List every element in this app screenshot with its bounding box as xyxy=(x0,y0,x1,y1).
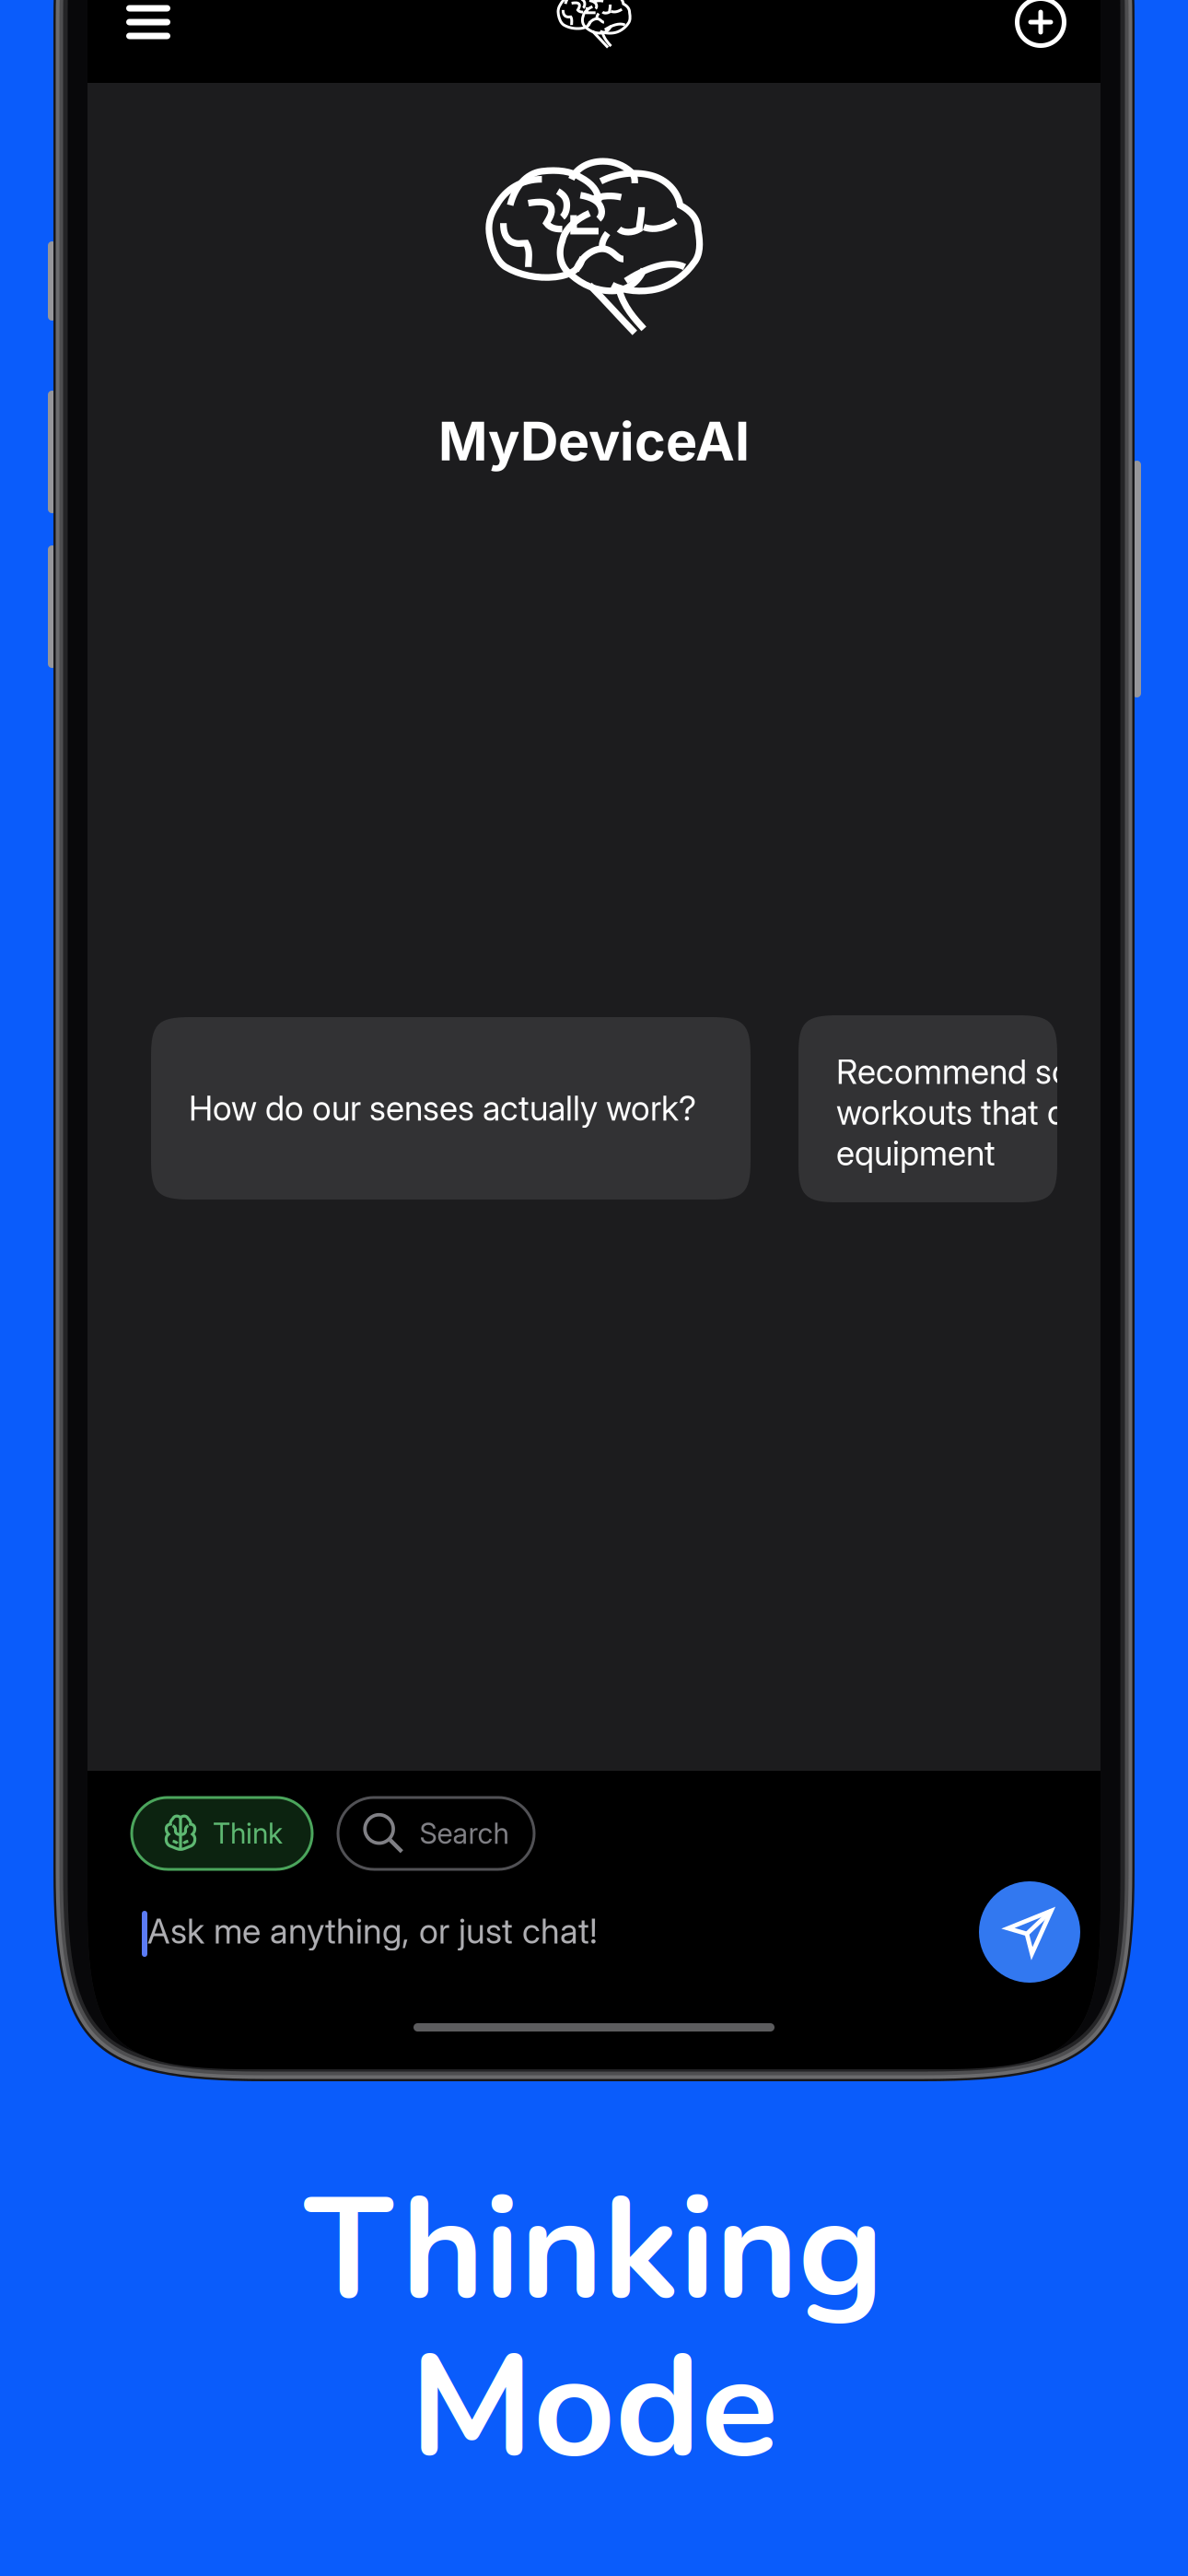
button[interactable]: Menu xyxy=(93,0,204,77)
button[interactable]: New chat xyxy=(985,0,1096,77)
button[interactable]: Search xyxy=(338,1797,534,1869)
staticText: Ask me anything, or just chat! xyxy=(147,1910,598,1952)
staticText: Thinking xyxy=(304,2153,884,2347)
staticText: MyDeviceAI xyxy=(438,409,750,473)
staticText: Recommend some quick workouts that don't… xyxy=(836,1051,1188,1174)
button[interactable]: Think xyxy=(132,1797,312,1869)
button[interactable]: How do our senses actually work? xyxy=(151,1017,751,1200)
button[interactable]: Recommend some quick workouts that don't… xyxy=(798,1015,1057,1202)
staticText: How do our senses actually work? xyxy=(189,1088,696,1129)
staticText: Search xyxy=(419,1816,509,1850)
staticText: Mode xyxy=(410,2310,778,2505)
staticText: Think xyxy=(213,1816,283,1850)
button[interactable]: Send xyxy=(979,1881,1080,1983)
